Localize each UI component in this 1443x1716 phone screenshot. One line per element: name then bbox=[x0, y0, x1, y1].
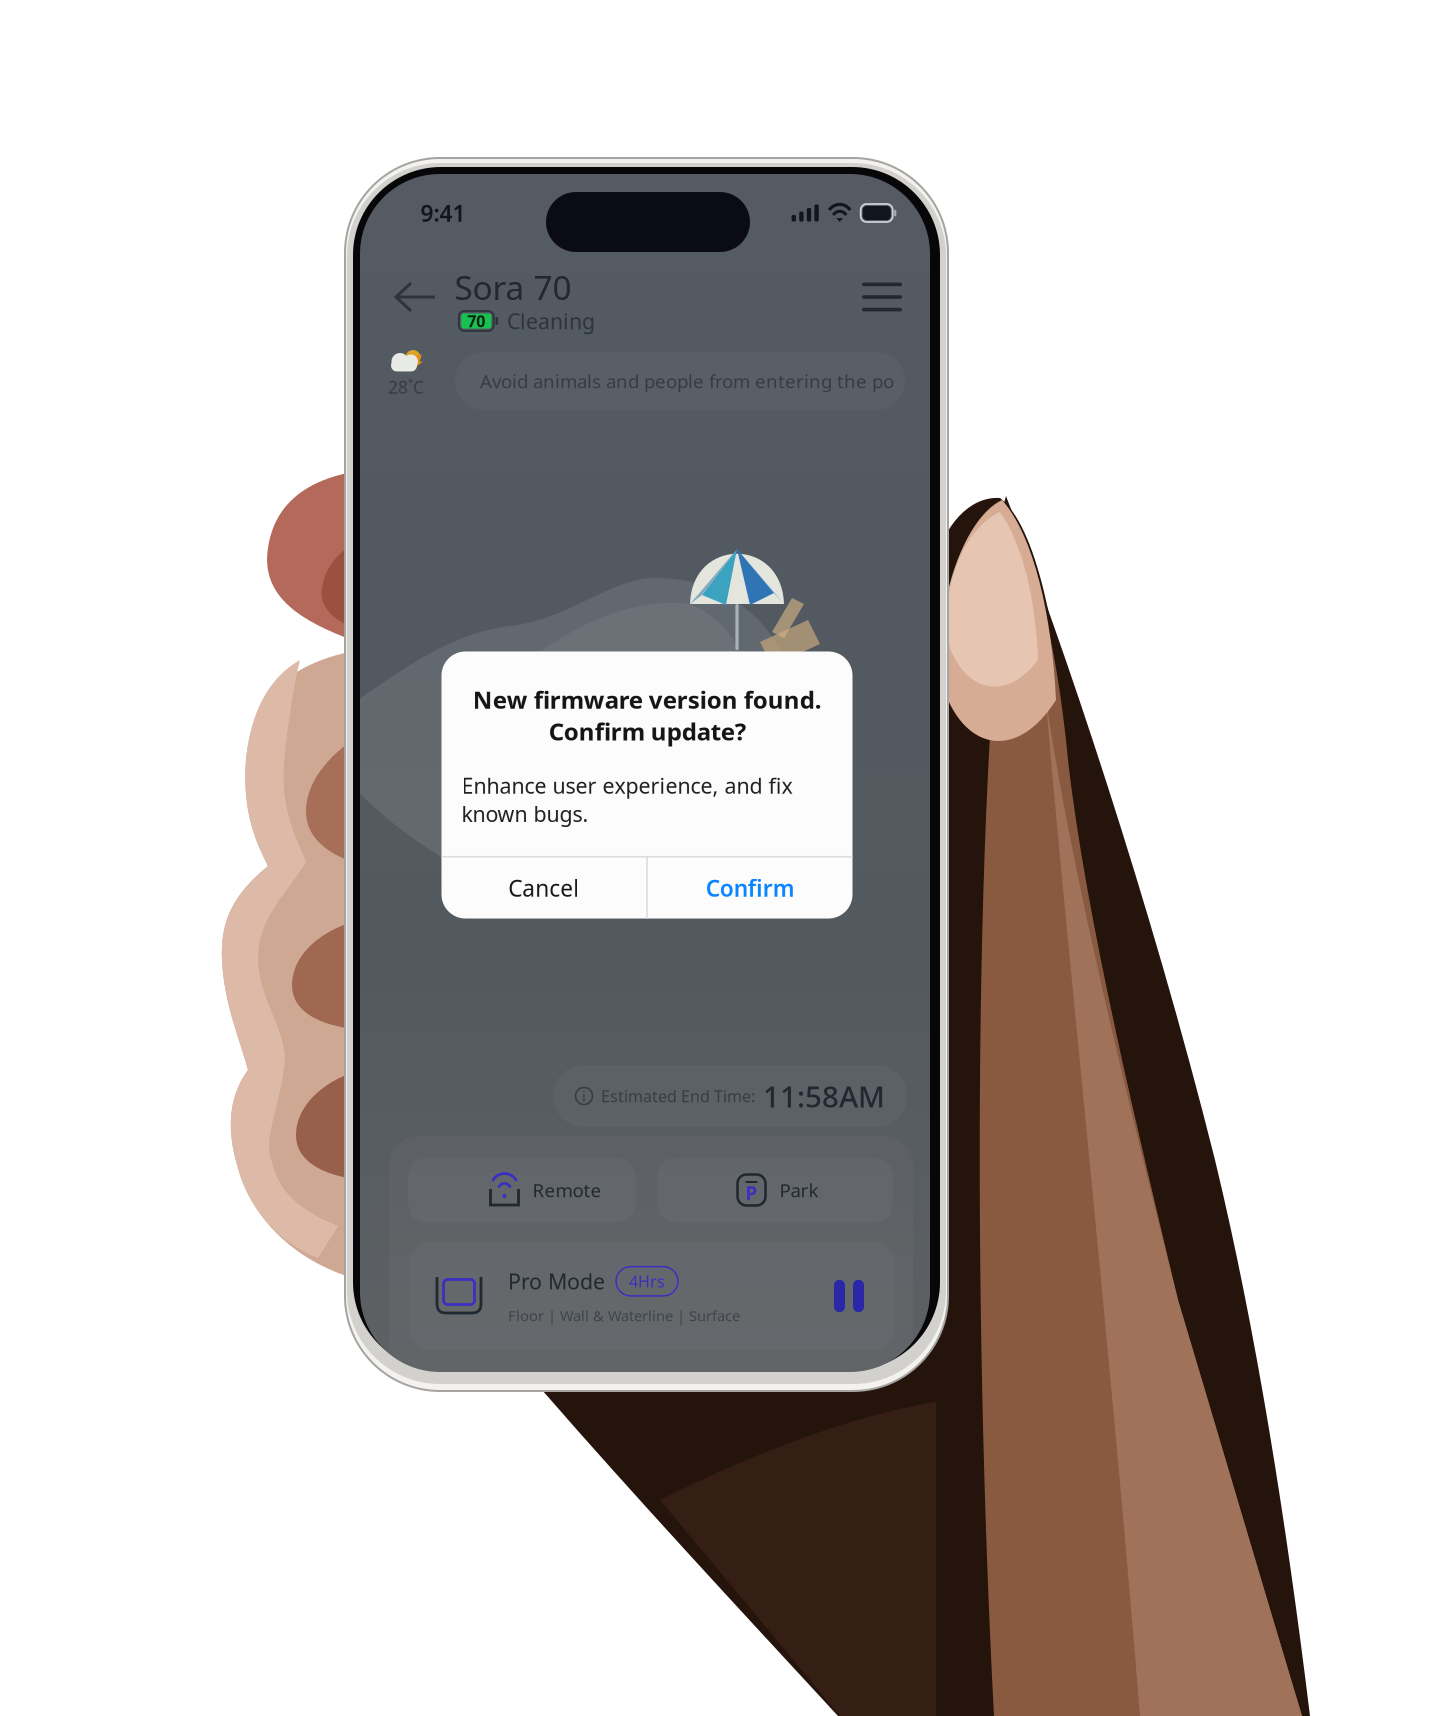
button[interactable]: P bbox=[657, 1158, 892, 1222]
staticText: Estimated End Time: bbox=[601, 1085, 755, 1107]
staticText: Park bbox=[779, 1178, 818, 1202]
staticText: Cancel bbox=[508, 873, 579, 903]
button[interactable]: Cancel bbox=[441, 857, 646, 918]
staticText: Cleaning bbox=[507, 307, 595, 335]
staticText: i bbox=[582, 1086, 586, 1106]
staticText: Sora 70 bbox=[454, 265, 571, 309]
staticText: 11:58AM bbox=[763, 1076, 885, 1115]
staticText: New firmware version found. Confirm upda… bbox=[472, 683, 821, 747]
staticText: Confirm bbox=[706, 873, 795, 903]
button[interactable]: Confirm bbox=[648, 857, 852, 918]
staticText: Pro Mode bbox=[508, 1267, 605, 1295]
staticText: Avoid animals and people from entering t… bbox=[480, 369, 894, 393]
staticText: P bbox=[745, 1181, 757, 1205]
button[interactable]: Remote bbox=[408, 1158, 635, 1222]
staticText: 70 bbox=[467, 310, 485, 332]
staticText: Remote bbox=[532, 1178, 601, 1202]
staticText: 28˚C bbox=[388, 375, 424, 398]
staticText: 4Hrs bbox=[629, 1271, 665, 1292]
staticText: Floor | Wall & Waterline | Surface bbox=[508, 1306, 740, 1325]
button[interactable]: Back bbox=[393, 277, 439, 317]
staticText: Enhance user experience, and fix known b… bbox=[461, 771, 792, 828]
button[interactable]: Menu bbox=[862, 281, 902, 313]
staticText: 9:41 bbox=[420, 198, 465, 228]
button[interactable]: Pro Mode bbox=[410, 1242, 894, 1349]
